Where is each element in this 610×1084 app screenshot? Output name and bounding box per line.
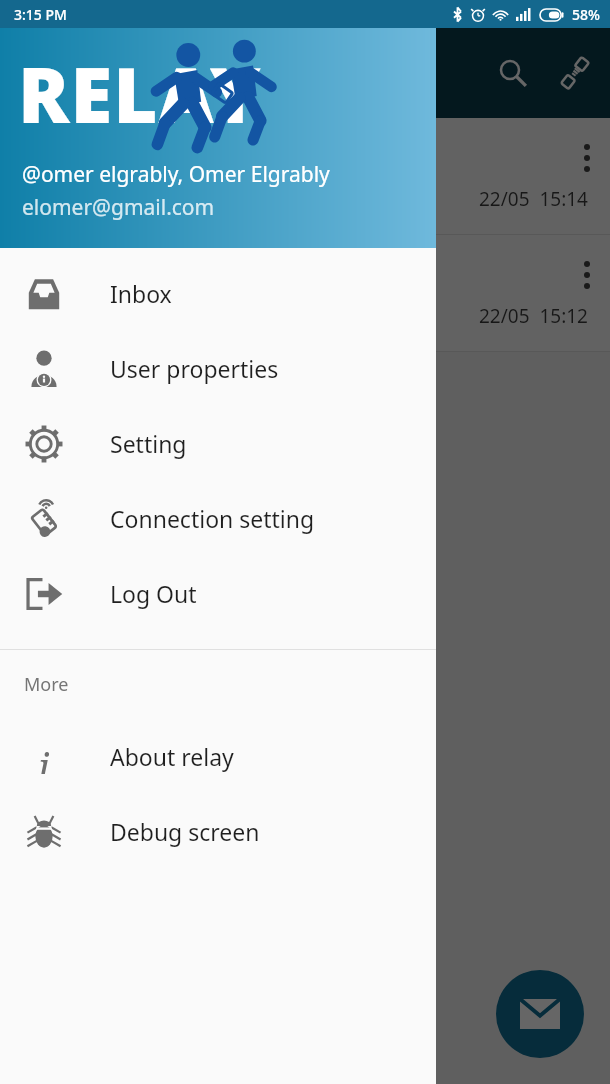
staticText: Connection setting [110, 503, 315, 534]
button[interactable]: i [0, 719, 436, 794]
staticText: More [24, 672, 69, 697]
button[interactable]: 22/05 15:14 [0, 118, 610, 234]
staticText: 22/05 15:14 [479, 186, 588, 212]
button[interactable]: Setting [0, 406, 436, 481]
button[interactable]: User properties [0, 331, 436, 406]
button[interactable]: 22/05 15:12 [0, 235, 610, 351]
staticText: Setting [110, 428, 187, 459]
button[interactable]: Inbox [0, 256, 436, 331]
staticText: Debug screen [110, 816, 260, 847]
staticText: Inbox [110, 278, 172, 309]
staticText: elomer@gmail.com [22, 193, 215, 222]
button[interactable]: Compose message [496, 970, 584, 1058]
staticText: About relay [110, 741, 234, 772]
staticText: 3:15 PM [14, 5, 67, 24]
button[interactable] [0, 28, 610, 1084]
staticText: 22/05 15:12 [479, 303, 588, 329]
staticText: 58% [572, 5, 600, 24]
button[interactable]: Search [486, 46, 540, 100]
staticText: User properties [110, 353, 279, 384]
button[interactable]: Connect device [548, 46, 602, 100]
staticText: i [38, 740, 50, 774]
staticText: RELAY [18, 42, 262, 146]
button[interactable]: Connection setting [0, 481, 436, 556]
button[interactable]: Debug screen [0, 794, 436, 869]
staticText: Log Out [110, 578, 197, 609]
staticText: @omer elgrably, Omer Elgrably [22, 160, 330, 189]
button[interactable]: Log Out [0, 556, 436, 631]
